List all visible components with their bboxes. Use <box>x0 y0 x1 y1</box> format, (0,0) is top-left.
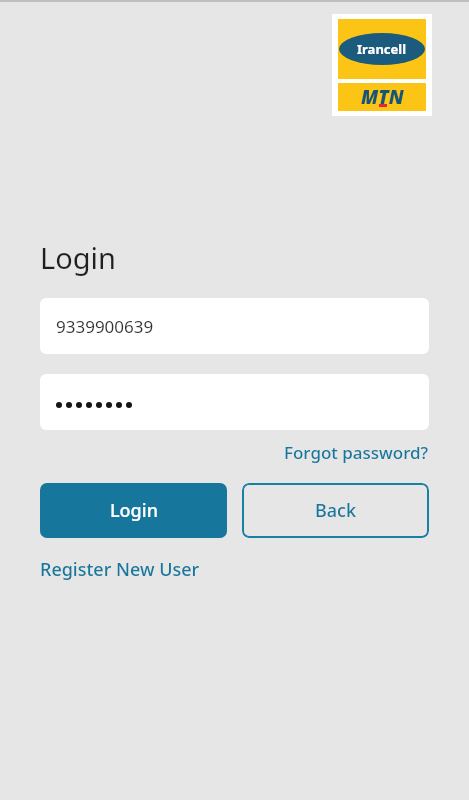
other: Irancell MTN logo <box>332 14 432 116</box>
staticText: 9339900639 <box>56 315 154 338</box>
button[interactable]: 9339900639 <box>40 298 429 354</box>
staticText: MTN <box>361 84 404 110</box>
staticText: Forgot password? <box>284 441 429 464</box>
staticText: Back <box>315 498 356 523</box>
staticText: Login <box>110 498 158 523</box>
button[interactable]: Register New User <box>40 554 200 585</box>
button[interactable]: Login <box>40 483 227 538</box>
staticText: Register New User <box>40 557 200 582</box>
staticText: Irancell <box>357 40 407 58</box>
button[interactable]: Forgot password? <box>284 438 429 467</box>
button[interactable] <box>40 374 429 430</box>
staticText: Login <box>40 238 116 277</box>
button[interactable]: Back <box>242 483 429 538</box>
